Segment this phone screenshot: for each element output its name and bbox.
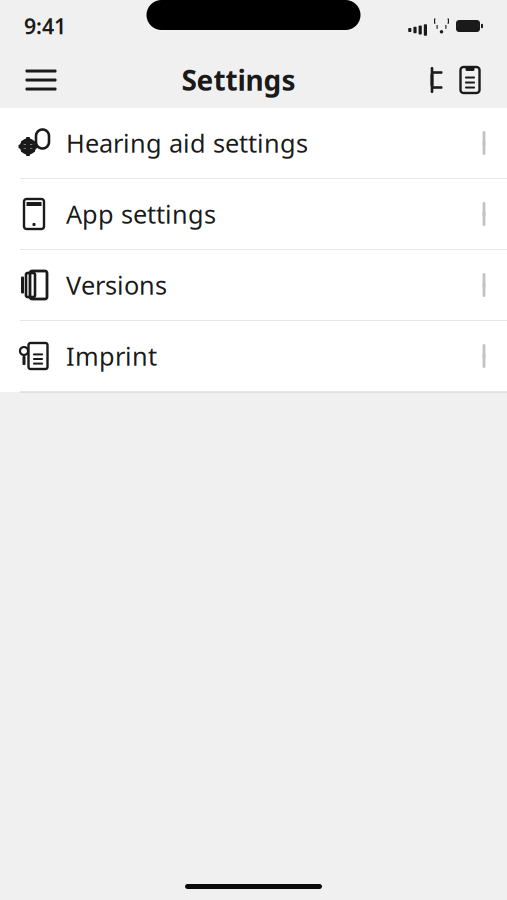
staticText: App settings: [66, 197, 216, 231]
button[interactable]: App settings: [0, 179, 507, 250]
button[interactable]: Reports: [451, 58, 489, 102]
staticText: Hearing aid settings: [66, 126, 308, 160]
button[interactable]: Bluetooth: [413, 58, 451, 102]
button[interactable]: Imprint: [0, 321, 507, 392]
staticText: Imprint: [66, 339, 157, 373]
staticText: 9:41: [24, 12, 66, 40]
staticText: Settings: [181, 61, 295, 99]
button[interactable]: Menu: [18, 58, 64, 102]
button[interactable]: Versions: [0, 250, 507, 321]
button[interactable]: Hearing aid settings: [0, 108, 507, 179]
staticText: Versions: [66, 268, 167, 302]
